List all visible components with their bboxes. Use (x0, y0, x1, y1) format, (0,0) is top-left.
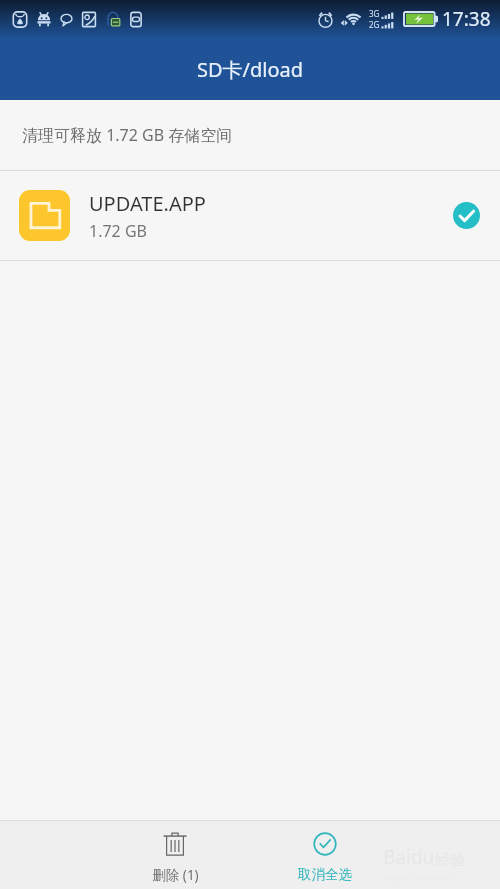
button[interactable]: 取消全选 (250, 821, 400, 889)
staticText: 经验 (435, 851, 465, 870)
button[interactable]: UPDATE.APP (0, 171, 500, 260)
staticText: SD卡/dload (197, 56, 304, 83)
staticText: 2G (369, 19, 380, 30)
button[interactable]: 删除 (1) (100, 821, 250, 889)
staticText: 3G (369, 8, 380, 19)
other: Selected (453, 202, 480, 229)
staticText: 17:38 (442, 6, 491, 32)
staticText: 清理可释放 1.72 GB 存储空间 (22, 124, 233, 146)
staticText: 取消全选 (298, 866, 352, 883)
staticText: 1.72 GB (89, 220, 147, 242)
staticText: UPDATE.APP (89, 190, 206, 217)
staticText: 删除 (1) (152, 866, 199, 884)
